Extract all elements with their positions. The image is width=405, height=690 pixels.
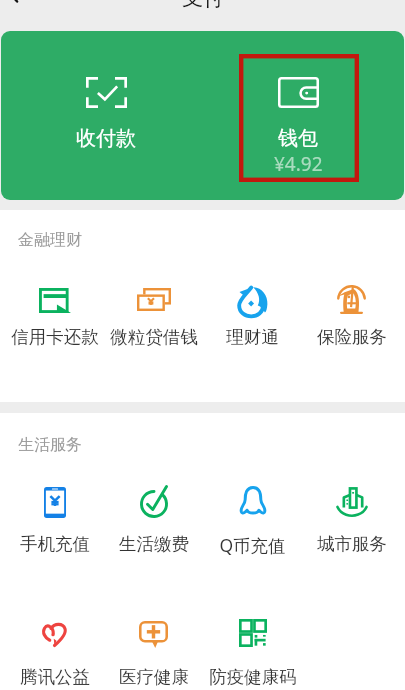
- button[interactable]: 手机充值: [5, 484, 104, 555]
- button[interactable]: 信用卡还款: [5, 284, 104, 348]
- staticText: ¥4.92: [274, 151, 323, 177]
- button[interactable]: 医疗健康: [104, 618, 203, 688]
- staticText: 微粒贷借钱: [110, 326, 198, 348]
- button[interactable]: 生活缴费: [104, 484, 203, 555]
- staticText: 医疗健康: [119, 666, 189, 688]
- staticText: 收付款: [76, 126, 136, 151]
- button[interactable]: 收付款: [10, 31, 202, 200]
- staticText: 理财通: [226, 326, 279, 348]
- staticText: 支付: [182, 0, 224, 11]
- staticText: 手机充值: [20, 533, 90, 555]
- staticText: 保险服务: [317, 326, 387, 348]
- staticText: 金融理财: [18, 230, 82, 250]
- staticText: Q币充值: [219, 533, 286, 557]
- button[interactable]: Q币充值: [203, 484, 302, 557]
- button[interactable]: Back: [0, 0, 40, 6]
- staticText: 防疫健康码: [209, 666, 297, 688]
- button[interactable]: 微粒贷借钱: [104, 284, 203, 348]
- button[interactable]: 钱包: [202, 31, 394, 200]
- staticText: 钱包: [278, 126, 318, 151]
- button[interactable]: 城市服务: [302, 484, 401, 555]
- staticText: 生活缴费: [119, 533, 189, 555]
- button[interactable]: 理财通: [203, 284, 302, 348]
- staticText: 信用卡还款: [11, 326, 99, 348]
- button[interactable]: 保险服务: [302, 284, 401, 348]
- staticText: 腾讯公益: [20, 666, 90, 688]
- staticText: 生活服务: [18, 435, 82, 455]
- staticText: 城市服务: [317, 533, 387, 555]
- button[interactable]: 腾讯公益: [5, 618, 104, 688]
- button[interactable]: 防疫健康码: [203, 618, 302, 688]
